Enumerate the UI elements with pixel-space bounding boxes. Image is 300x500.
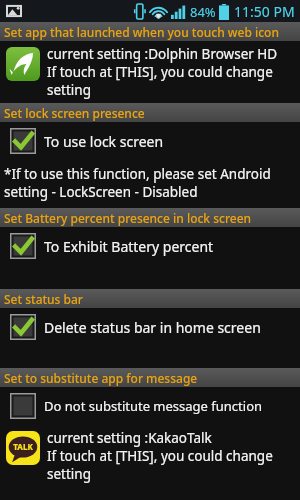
staticText: If touch at [THIS], you could change <box>47 447 273 465</box>
staticText: *If to use this function, please set And… <box>4 165 271 183</box>
other: KakaoTalk <box>6 431 40 465</box>
button[interactable]: Delete status bar in home screen <box>0 308 300 346</box>
staticText: 11:50 PM <box>234 2 295 21</box>
staticText: Delete status bar in home screen <box>44 318 261 337</box>
staticText: Set lock screen presence <box>4 105 145 121</box>
button[interactable]: KakaoTalk <box>0 425 300 487</box>
staticText: 84% <box>190 3 216 21</box>
staticText: current setting :Dolphin Browser HD <box>47 45 278 63</box>
staticText: setting <box>47 81 91 99</box>
staticText: Set app that launched when you touch web… <box>4 24 279 40</box>
button[interactable]: To use lock screen <box>0 122 300 160</box>
staticText: If touch at [THIS], you could change <box>47 63 273 81</box>
staticText: Set status bar <box>4 291 83 307</box>
staticText: To use lock screen <box>44 132 164 151</box>
other: Dolphin Browser <box>6 47 40 81</box>
staticText: setting - LockScreen - Disabled <box>4 183 198 201</box>
staticText: setting <box>47 465 91 483</box>
button[interactable]: Dolphin Browser <box>0 41 300 103</box>
button[interactable]: Do not substitute message function <box>0 387 300 425</box>
staticText: TALK <box>13 441 33 452</box>
staticText: current setting :KakaoTalk <box>47 429 212 447</box>
staticText: Set Battery percent presence in lock scr… <box>4 210 252 226</box>
staticText: Do not substitute message function <box>44 397 263 415</box>
staticText: To Exhibit Battery percent <box>44 237 214 256</box>
button[interactable]: To Exhibit Battery percent <box>0 227 300 265</box>
staticText: Set to substitute app for message <box>4 370 198 386</box>
